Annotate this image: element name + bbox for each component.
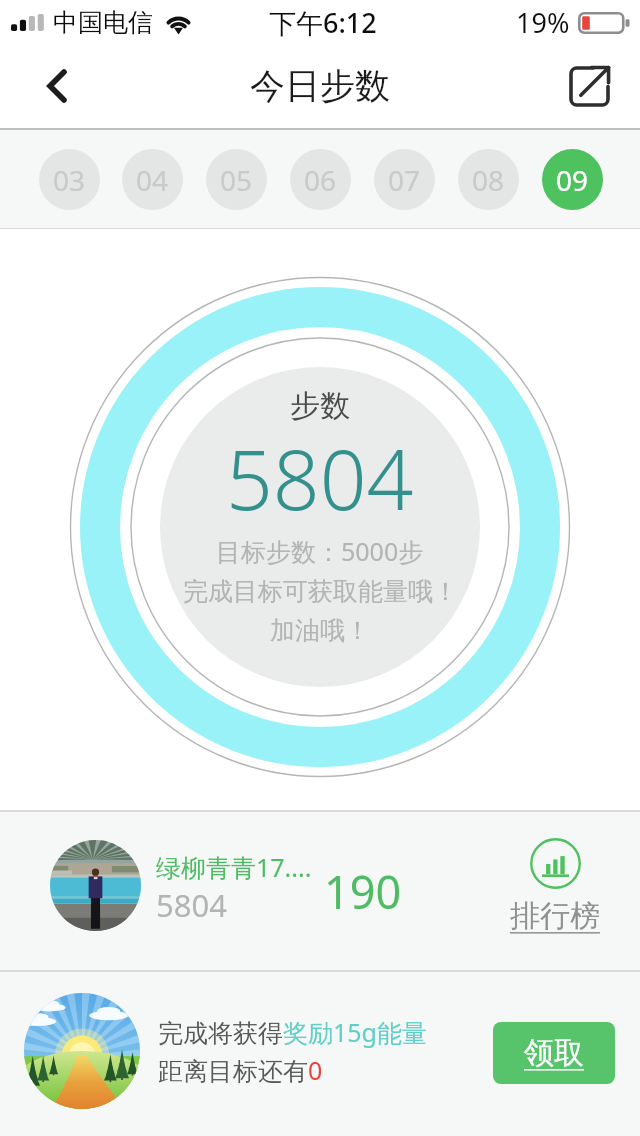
staticText: 190 [324,861,402,922]
staticText: 04 [136,161,169,199]
button[interactable]: 04 [111,130,194,228]
button[interactable]: 05 [194,130,278,228]
staticText: 领取 [524,1034,584,1072]
button[interactable]: Share [540,44,640,128]
button[interactable]: 领取 [493,1022,615,1084]
staticText: 08 [472,161,505,199]
button[interactable]: 03 [28,130,111,228]
staticText: 07 [388,161,421,199]
staticText: 完成将获得奖励15g能量 [158,1015,427,1049]
staticText: 19% [516,4,570,41]
button[interactable]: Back [0,44,100,128]
staticText: 距离目标还有0 [158,1053,323,1087]
button[interactable]: 06 [278,130,362,228]
staticText: 完成目标可获取能量哦！ [183,576,458,607]
staticText: 06 [304,161,337,199]
staticText: 步数 [290,387,350,425]
staticText: 绿柳青青17.... [156,850,312,884]
button[interactable]: 排行榜 [489,838,621,935]
button[interactable]: 08 [446,130,530,228]
button[interactable]: 绿柳青青17.... [0,812,640,970]
staticText: 下午6:12 [269,4,377,41]
button[interactable]: 07 [362,130,446,228]
staticText: 排行榜 [510,897,600,935]
staticText: 03 [53,161,86,199]
staticText: 5804 [226,422,414,534]
staticText: 今日步数 [250,64,390,108]
staticText: 5804 [156,884,227,926]
staticText: 05 [220,161,253,199]
staticText: 中国电信 [53,7,153,38]
button[interactable]: 09 [530,130,614,228]
staticText: 加油哦！ [270,615,370,646]
staticText: 目标步数：5000步 [216,534,424,568]
staticText: 09 [556,161,589,199]
